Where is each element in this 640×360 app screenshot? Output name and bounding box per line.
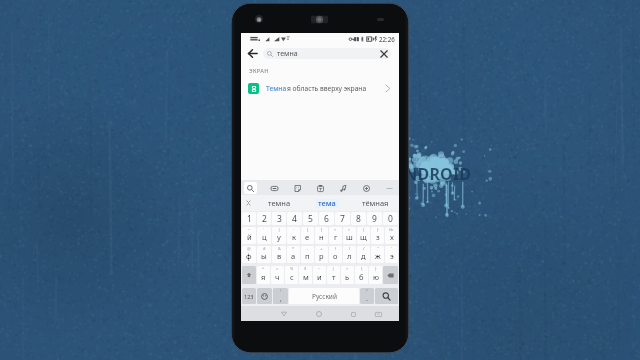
button[interactable]: Expand suggestions — [241, 195, 255, 211]
button[interactable]: Clipboard — [314, 182, 326, 194]
staticText: ! — [280, 288, 282, 293]
button[interactable]: { — [357, 227, 370, 244]
staticText: 3 — [277, 213, 282, 225]
staticText: к — [292, 232, 296, 242]
button[interactable]: Темна — [241, 78, 399, 99]
button[interactable]: ) — [343, 246, 356, 263]
button[interactable]: Hide keyboard — [373, 309, 383, 319]
button[interactable]: / — [357, 246, 370, 263]
staticText: 22:26 — [379, 35, 395, 43]
staticText: э — [390, 251, 394, 261]
staticText: * — [292, 246, 295, 251]
button[interactable]: Backspace — [383, 266, 398, 284]
button[interactable]: > — [341, 266, 354, 284]
staticText: р — [319, 251, 324, 261]
button[interactable]: 2 — [257, 212, 271, 225]
button[interactable]: 123 — [242, 288, 256, 304]
staticText: ~ — [318, 266, 321, 271]
button[interactable]: · — [287, 227, 300, 244]
staticText: п — [305, 251, 310, 261]
button[interactable]: > — [343, 227, 356, 244]
staticText: ы — [261, 251, 267, 261]
button[interactable]: Back — [241, 44, 263, 63]
staticText: темна — [277, 49, 298, 59]
button[interactable]: ] — [315, 227, 328, 244]
button[interactable]: 1 — [242, 212, 256, 225]
staticText: < — [334, 227, 337, 232]
button[interactable]: Voice typing — [337, 182, 349, 194]
button[interactable]: | — [272, 227, 286, 244]
button[interactable]: [ — [301, 227, 314, 244]
staticText: + — [320, 246, 323, 251]
button[interactable]: Back — [279, 309, 289, 319]
button[interactable]: темна — [263, 48, 391, 59]
button[interactable]: ` — [257, 227, 271, 244]
button[interactable]: " — [371, 246, 384, 263]
button[interactable]: Shift — [242, 266, 256, 284]
button[interactable]: 9 — [367, 212, 382, 225]
button[interactable]: GIF keyboard — [268, 182, 280, 194]
staticText: ч — [275, 272, 280, 282]
button[interactable]: Emoji — [257, 288, 272, 304]
staticText: > — [346, 266, 349, 271]
button[interactable]: Settings — [360, 182, 372, 194]
staticText: ? — [366, 288, 368, 293]
button[interactable]: Recent apps — [348, 309, 358, 319]
staticText: 0 — [388, 213, 393, 225]
button[interactable]: № — [385, 227, 398, 244]
button[interactable]: } — [371, 227, 384, 244]
button[interactable]: $ — [299, 266, 312, 284]
button[interactable]: ' — [385, 246, 398, 263]
button[interactable]: * — [287, 246, 300, 263]
button[interactable]: Stickers — [291, 182, 303, 194]
staticText: № — [389, 227, 394, 232]
button[interactable]: тёмная — [351, 195, 399, 211]
button[interactable]: Search — [244, 182, 257, 194]
button[interactable]: ~ — [242, 227, 256, 244]
staticText: 123 — [244, 293, 254, 300]
staticText: # — [263, 246, 266, 251]
button[interactable]: 8 — [351, 212, 366, 225]
button[interactable]: # — [257, 246, 271, 263]
button[interactable]: Home — [314, 309, 324, 319]
button[interactable]: ~ — [313, 266, 326, 284]
button[interactable]: тема — [303, 195, 351, 211]
button[interactable]: = — [271, 266, 284, 284]
staticText: а — [291, 251, 296, 261]
button[interactable]: { — [355, 266, 368, 284]
button[interactable]: < — [329, 227, 342, 244]
staticText: б — [359, 272, 364, 282]
button[interactable]: ? — [360, 288, 374, 304]
staticText: 9 — [372, 213, 377, 225]
button[interactable]: 3 — [272, 212, 286, 225]
staticText: г — [334, 232, 338, 242]
staticText: ' — [391, 246, 392, 251]
button[interactable]: | — [327, 266, 340, 284]
button[interactable]: - — [301, 246, 314, 263]
staticText: ~ — [248, 227, 251, 232]
button[interactable]: ! — [273, 288, 288, 304]
button[interactable]: Search — [375, 288, 398, 304]
staticText: { — [361, 266, 363, 271]
button[interactable]: & — [272, 246, 286, 263]
button[interactable]: 0 — [383, 212, 398, 225]
staticText: я — [261, 272, 266, 282]
button[interactable]: Русский — [289, 288, 359, 304]
button[interactable]: % — [285, 266, 298, 284]
button[interactable]: More options — [383, 182, 395, 194]
button[interactable]: 6 — [319, 212, 334, 225]
button[interactable]: Clear search — [376, 48, 391, 59]
button[interactable]: 7 — [335, 212, 350, 225]
staticText: 4 — [292, 213, 297, 225]
button[interactable]: } — [369, 266, 382, 284]
staticText: щ — [360, 232, 367, 242]
staticText: , — [280, 294, 282, 304]
button[interactable]: темна — [255, 195, 303, 211]
button[interactable]: @ — [242, 246, 256, 263]
staticText: ANDROID — [393, 163, 472, 185]
button[interactable]: ^ — [257, 266, 270, 284]
button[interactable]: ( — [329, 246, 342, 263]
button[interactable]: 4 — [287, 212, 302, 225]
button[interactable]: + — [315, 246, 328, 263]
button[interactable]: 5 — [303, 212, 318, 225]
